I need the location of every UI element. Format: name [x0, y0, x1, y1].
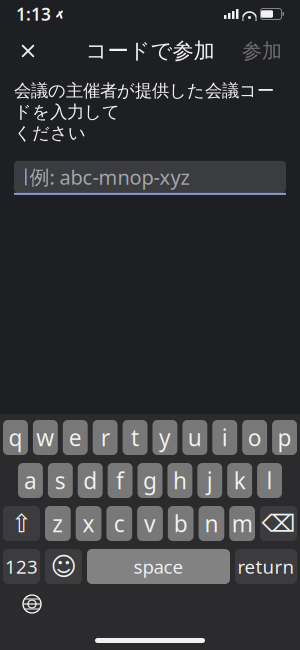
button[interactable]: v — [137, 506, 163, 541]
button[interactable]: p — [272, 420, 297, 455]
button[interactable]: y — [152, 420, 177, 455]
button[interactable]: return — [235, 549, 297, 584]
button[interactable]: s — [48, 463, 73, 498]
button[interactable]: q — [3, 420, 28, 455]
button[interactable]: g — [138, 463, 162, 498]
staticText: 例: abc-mnop-xyz — [30, 164, 190, 190]
button[interactable]: c — [106, 506, 132, 541]
staticText: b — [174, 508, 188, 538]
button[interactable]: e — [63, 420, 88, 455]
button[interactable]: h — [167, 463, 192, 498]
staticText: v — [144, 508, 156, 538]
button[interactable]: 参加 — [230, 29, 294, 73]
staticText: o — [248, 422, 262, 452]
button[interactable]: r — [93, 420, 118, 455]
staticText: c — [114, 508, 125, 538]
button[interactable]: a — [18, 463, 43, 498]
staticText: ⇧ — [11, 509, 32, 538]
button[interactable]: l — [257, 463, 282, 498]
staticText: h — [173, 465, 187, 495]
staticText: w — [36, 422, 54, 452]
staticText: a — [24, 465, 37, 495]
staticText: コードで参加 — [85, 38, 214, 64]
staticText: ☺ — [50, 552, 76, 581]
button[interactable]: m — [229, 506, 255, 541]
staticText: p — [278, 422, 292, 452]
staticText: 1:13 — [16, 2, 51, 25]
button[interactable]: space — [87, 549, 230, 584]
button[interactable]: u — [182, 420, 207, 455]
staticText: l — [267, 465, 273, 495]
button[interactable]: d — [78, 463, 103, 498]
staticText: x — [83, 508, 95, 538]
staticText: 123 — [5, 554, 38, 579]
staticText: d — [83, 465, 97, 495]
staticText: space — [133, 554, 183, 579]
staticText: m — [232, 508, 253, 538]
staticText: ⌫ — [261, 510, 295, 537]
staticText: g — [143, 465, 157, 495]
button[interactable]: 削除 — [260, 506, 297, 541]
staticText: r — [101, 422, 110, 452]
staticText: j — [207, 465, 213, 495]
staticText: f — [116, 465, 124, 495]
button[interactable]: j — [197, 463, 222, 498]
button[interactable]: 次のキーボード — [10, 586, 54, 622]
staticText: z — [52, 508, 63, 538]
staticText: i — [222, 422, 228, 452]
button[interactable]: 閉じる — [6, 29, 50, 73]
staticText: e — [69, 422, 82, 452]
button[interactable]: k — [227, 463, 252, 498]
button[interactable]: 123 — [3, 549, 40, 584]
button[interactable]: f — [108, 463, 133, 498]
button[interactable]: t — [123, 420, 147, 455]
staticText: u — [188, 422, 202, 452]
button[interactable]: n — [199, 506, 224, 541]
button[interactable]: w — [33, 420, 58, 455]
staticText: k — [234, 465, 246, 495]
button[interactable]: z — [45, 506, 71, 541]
staticText: s — [55, 465, 66, 495]
staticText: 会議の主催者が提供した会議コードを入力して ください — [14, 80, 274, 144]
button[interactable]: b — [168, 506, 194, 541]
staticText: 参加 — [242, 39, 282, 63]
button[interactable]: 絵文字 — [45, 549, 82, 584]
staticText: n — [204, 508, 218, 538]
staticText: q — [8, 422, 22, 452]
button[interactable]: Shift — [3, 506, 40, 541]
staticText: return — [237, 554, 294, 579]
staticText: y — [159, 422, 171, 452]
button[interactable]: x — [76, 506, 101, 541]
staticText: t — [131, 422, 139, 452]
button[interactable]: o — [242, 420, 267, 455]
button[interactable]: i — [212, 420, 237, 455]
